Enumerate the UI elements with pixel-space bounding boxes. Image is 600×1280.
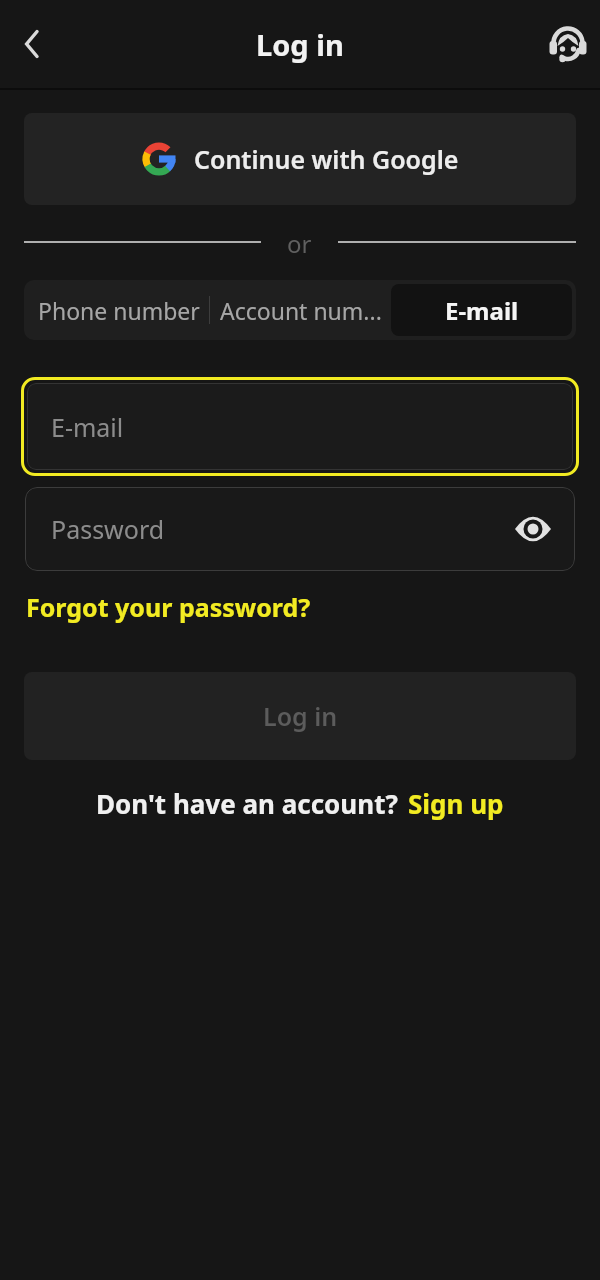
staticText: Don't have an account?	[96, 786, 398, 821]
staticText: E-mail	[445, 294, 519, 327]
button[interactable]: E-mail	[391, 284, 572, 336]
staticText: Sign up	[408, 786, 504, 821]
button[interactable]: Continue with Google	[24, 113, 576, 205]
staticText: Account num...	[220, 295, 382, 326]
button[interactable]: Sign up	[408, 786, 504, 821]
button[interactable]: E-mail	[27, 383, 573, 470]
button[interactable]	[536, 0, 600, 88]
staticText: Phone number	[38, 295, 200, 326]
staticText: Log in	[263, 699, 338, 733]
button[interactable]: Forgot your password?	[26, 590, 311, 624]
button[interactable]	[0, 0, 64, 88]
button[interactable]: Password	[25, 487, 575, 571]
staticText: or	[287, 227, 312, 257]
button[interactable]: Phone number	[28, 284, 209, 336]
button[interactable]: Account num...	[210, 284, 391, 336]
staticText: Password	[51, 512, 165, 546]
staticText: E-mail	[51, 410, 124, 444]
staticText: Log in	[256, 25, 344, 64]
staticText: Continue with Google	[194, 142, 459, 176]
button[interactable]: Log in	[24, 672, 576, 760]
